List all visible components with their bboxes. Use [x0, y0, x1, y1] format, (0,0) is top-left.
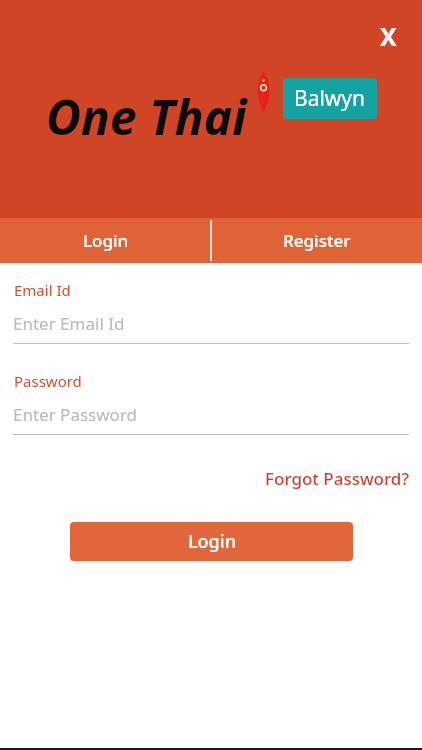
staticText: Email Id	[14, 280, 71, 300]
staticText: Forgot Password?	[265, 467, 409, 490]
button[interactable]: Login	[0, 218, 211, 263]
button[interactable]: Forgot Password?	[265, 467, 409, 490]
staticText: Balwyn	[294, 84, 366, 113]
staticText: Password	[14, 371, 82, 391]
staticText: One Thai	[46, 84, 247, 149]
staticText: Enter Password	[13, 403, 138, 426]
button[interactable]: Register	[211, 218, 422, 263]
staticText: Register	[283, 229, 351, 252]
button[interactable]: Enter Password	[13, 403, 409, 435]
staticText: Login	[83, 229, 129, 252]
staticText: X	[380, 19, 397, 53]
staticText: Enter Email Id	[13, 312, 125, 335]
button[interactable]: Enter Email Id	[13, 312, 409, 344]
button[interactable]: Close	[362, 10, 414, 62]
staticText: Login	[188, 529, 236, 554]
button[interactable]: Balwyn	[283, 78, 377, 119]
button[interactable]: Login	[70, 522, 353, 561]
